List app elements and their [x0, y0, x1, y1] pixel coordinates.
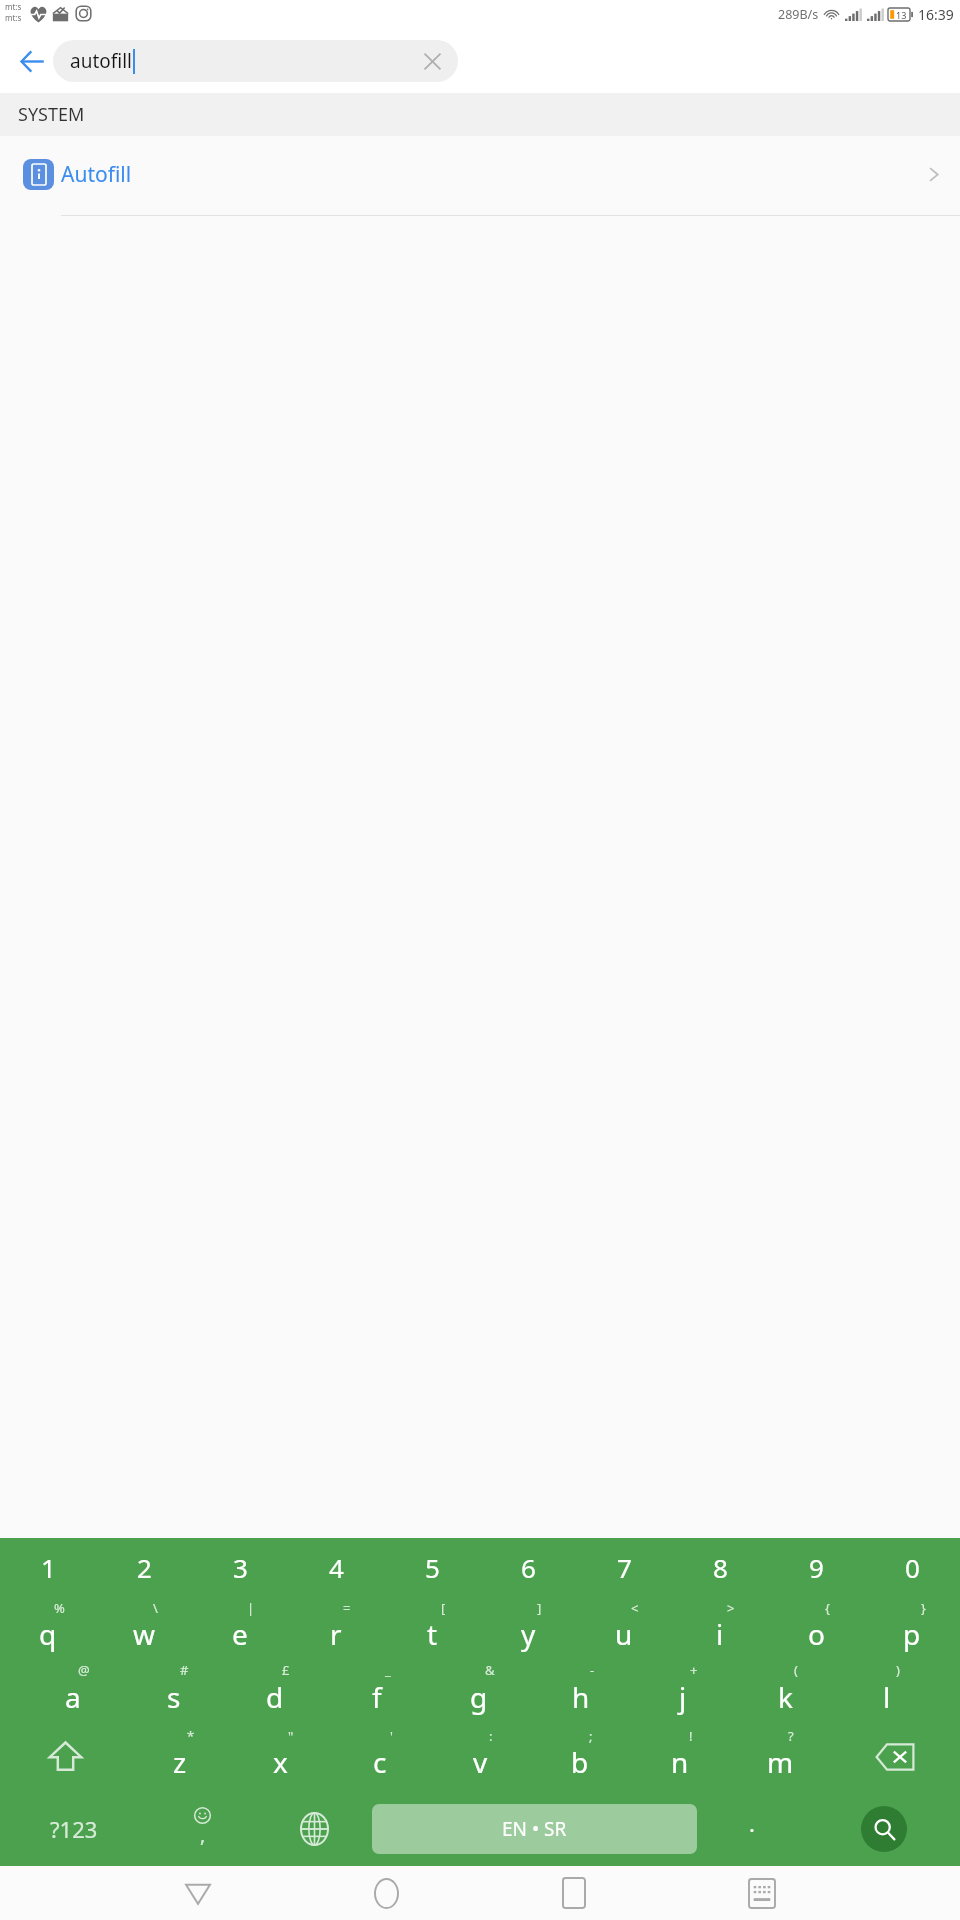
button[interactable]: 1 [0, 1538, 96, 1597]
button[interactable]: Hide keyboard [668, 1866, 856, 1920]
staticText: \ [153, 1599, 158, 1617]
staticText: + [690, 1661, 698, 1679]
staticText: t [427, 1615, 438, 1653]
button[interactable]: ! [630, 1722, 730, 1791]
button[interactable]: £ [224, 1659, 326, 1722]
staticText: # [180, 1661, 189, 1679]
button[interactable]: ( [734, 1659, 836, 1722]
button[interactable]: # [123, 1659, 224, 1722]
staticText: 289B/s [778, 6, 819, 23]
button[interactable]: Clear search [412, 41, 452, 81]
button[interactable]: + [632, 1659, 734, 1722]
staticText: s [167, 1678, 181, 1716]
button[interactable]: ; [530, 1722, 630, 1791]
staticText: d [266, 1678, 284, 1716]
staticText: v [473, 1743, 488, 1781]
button[interactable]: & [428, 1659, 530, 1722]
button[interactable]: EN • SR [372, 1804, 697, 1854]
staticText: 8 [713, 1550, 728, 1585]
button[interactable]: Home [292, 1866, 480, 1920]
button[interactable]: Back [104, 1866, 292, 1920]
button[interactable]: ' [330, 1722, 430, 1791]
button[interactable]: ) [836, 1659, 938, 1722]
button[interactable]: [ [384, 1597, 480, 1659]
button[interactable]: . [697, 1791, 807, 1866]
staticText: ' [390, 1727, 393, 1745]
staticText: k [778, 1678, 793, 1716]
button[interactable]: 8 [672, 1538, 768, 1597]
button[interactable]: { [768, 1597, 864, 1659]
staticText: e [232, 1615, 248, 1653]
button[interactable]: % [0, 1597, 96, 1659]
staticText: u [615, 1615, 633, 1653]
button[interactable]: Autofill [0, 136, 960, 216]
staticText: _ [385, 1661, 391, 1679]
button[interactable]: 4 [288, 1538, 384, 1597]
staticText: 3 [233, 1550, 248, 1585]
button[interactable]: Change language [257, 1791, 372, 1866]
button[interactable]: < [576, 1597, 672, 1659]
button[interactable]: 2 [96, 1538, 192, 1597]
button[interactable]: = [288, 1597, 384, 1659]
staticText: : [489, 1727, 493, 1745]
staticText: £ [282, 1661, 290, 1679]
staticText: g [470, 1678, 488, 1716]
staticText: } [921, 1599, 926, 1617]
staticText: h [572, 1678, 590, 1716]
staticText: o [808, 1615, 825, 1653]
staticText: y [521, 1615, 536, 1653]
staticText: ? [788, 1727, 794, 1745]
staticText: 0 [905, 1550, 920, 1585]
button[interactable]: ?123 [0, 1791, 147, 1866]
button[interactable]: > [672, 1597, 768, 1659]
staticText: ?123 [50, 1814, 98, 1844]
staticText: x [273, 1743, 288, 1781]
button[interactable]: Recent apps [480, 1866, 668, 1920]
button[interactable]: } [864, 1597, 960, 1659]
staticText: 13 [896, 9, 907, 21]
button[interactable]: 0 [864, 1538, 960, 1597]
staticText: w [133, 1615, 156, 1653]
button[interactable]: 7 [576, 1538, 672, 1597]
staticText: 5 [425, 1550, 440, 1585]
staticText: ) [896, 1661, 900, 1679]
staticText: . [749, 1808, 755, 1838]
staticText: > [727, 1599, 735, 1617]
button[interactable]: Backspace [830, 1722, 960, 1791]
button[interactable]: 6 [480, 1538, 576, 1597]
staticText: r [330, 1615, 342, 1653]
button[interactable]: Back [8, 37, 56, 85]
button[interactable]: Search [861, 1806, 907, 1852]
staticText: = [343, 1599, 351, 1617]
button[interactable]: * [130, 1722, 230, 1791]
staticText: Autofill [61, 160, 132, 189]
staticText: l [883, 1678, 891, 1716]
button[interactable]: \ [96, 1597, 192, 1659]
staticText: [ [441, 1599, 446, 1617]
button[interactable]: 3 [192, 1538, 288, 1597]
button[interactable]: 5 [384, 1538, 480, 1597]
button[interactable]: _ [326, 1659, 428, 1722]
button[interactable]: ] [480, 1597, 576, 1659]
staticText: ! [689, 1727, 693, 1745]
button[interactable]: ? [730, 1722, 830, 1791]
button[interactable]: " [230, 1722, 330, 1791]
staticText: ( [794, 1661, 798, 1679]
staticText: < [631, 1599, 639, 1617]
staticText: j [679, 1678, 687, 1716]
button[interactable]: - [530, 1659, 632, 1722]
staticText: 7 [617, 1550, 632, 1585]
staticText: EN • SR [502, 1816, 567, 1842]
button[interactable]: Shift [0, 1722, 130, 1791]
staticText: ] [537, 1599, 542, 1617]
button[interactable]: 9 [768, 1538, 864, 1597]
button[interactable]: @ [22, 1659, 123, 1722]
staticText: m [767, 1743, 794, 1781]
button[interactable]: : [430, 1722, 530, 1791]
staticText: a [65, 1678, 81, 1716]
button[interactable]: Emoji [147, 1791, 257, 1866]
staticText: , [200, 1821, 206, 1848]
button[interactable]: | [192, 1597, 288, 1659]
staticText: 4 [329, 1550, 344, 1585]
button[interactable]: autofill [53, 40, 458, 82]
